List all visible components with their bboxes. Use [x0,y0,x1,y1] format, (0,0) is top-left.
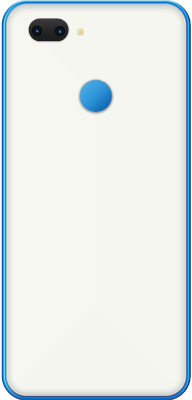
button[interactable]: Phone back panel [0,0,192,400]
